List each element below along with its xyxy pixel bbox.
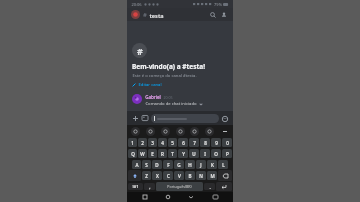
staticText: Q <box>131 151 135 157</box>
button[interactable]: E <box>148 149 157 158</box>
button[interactable]: GIF <box>176 127 185 136</box>
button[interactable]: J <box>196 160 206 169</box>
button[interactable]: Backspace <box>218 170 232 181</box>
staticText: . <box>209 184 211 190</box>
button[interactable]: S <box>142 160 151 169</box>
button[interactable]: N <box>196 171 206 180</box>
button[interactable]: Y <box>178 149 188 158</box>
button[interactable]: Search <box>190 127 199 136</box>
staticText: Bem-vindo(a) a #testa! <box>132 62 205 71</box>
staticText: 5 <box>171 140 174 146</box>
button[interactable]: 3 <box>148 138 157 147</box>
staticText: 0 <box>226 140 229 146</box>
staticText: G <box>177 162 181 168</box>
button[interactable]: 4 <box>158 138 167 147</box>
button[interactable]: Stickers <box>161 127 170 136</box>
staticText: O <box>214 151 218 157</box>
staticText: V <box>178 173 181 179</box>
button[interactable]: # <box>143 11 207 19</box>
button[interactable]: M <box>207 171 217 180</box>
button[interactable]: 0 <box>222 138 232 147</box>
button[interactable]: Switch keyboard <box>203 192 227 202</box>
button[interactable]: Add attachment <box>130 113 140 123</box>
button[interactable]: Gabriel <box>132 94 228 107</box>
staticText: 79% <box>214 2 222 7</box>
button[interactable]: Enter <box>216 182 232 191</box>
staticText: Este é o começo do canal #testa. <box>132 73 197 79</box>
button[interactable]: Z <box>142 171 151 180</box>
button[interactable]: Server <box>131 10 140 19</box>
button[interactable]: Emoji <box>219 113 230 124</box>
button[interactable]: Search <box>207 9 218 20</box>
button[interactable]: T <box>168 149 177 158</box>
button[interactable]: V <box>174 171 184 180</box>
button[interactable]: P <box>222 149 232 158</box>
staticText: N <box>199 173 203 179</box>
button[interactable]: 2 <box>138 138 147 147</box>
staticText: Gabriel <box>145 94 161 100</box>
button[interactable]: B <box>185 171 195 180</box>
staticText: Editar canal <box>138 82 162 88</box>
button[interactable]: 6 <box>178 138 188 147</box>
button[interactable]: Collapse toolbar <box>220 127 229 136</box>
button[interactable]: G <box>174 160 184 169</box>
button[interactable]: F <box>163 160 173 169</box>
button[interactable]: Gallery <box>140 113 150 123</box>
staticText: Português(BR) <box>167 184 192 189</box>
button[interactable]: D <box>152 160 162 169</box>
button[interactable]: Shift <box>128 170 141 181</box>
staticText: P <box>226 151 229 157</box>
button[interactable]: A <box>132 160 141 169</box>
staticText: 20:05 <box>163 95 173 100</box>
staticText: R <box>161 151 164 157</box>
staticText: X <box>156 173 159 179</box>
staticText: # <box>137 45 143 57</box>
button[interactable]: Voice input <box>146 127 155 136</box>
staticText: K <box>211 162 214 168</box>
button[interactable]: X <box>152 171 162 180</box>
staticText: W <box>140 151 145 157</box>
button[interactable]: Q <box>128 149 137 158</box>
button[interactable]: K <box>207 160 217 169</box>
button[interactable]: Members <box>218 9 229 20</box>
button[interactable]: 8 <box>200 138 210 147</box>
button[interactable]: 9 <box>211 138 221 147</box>
button[interactable]: L <box>218 160 228 169</box>
button[interactable]: C <box>163 171 173 180</box>
button[interactable] <box>151 114 219 123</box>
staticText: # <box>143 11 147 19</box>
staticText: 20:06 <box>131 2 142 7</box>
staticText: B <box>188 173 192 179</box>
staticText: !#1 <box>132 184 139 190</box>
staticText: D <box>155 162 159 168</box>
staticText: testa <box>149 12 164 19</box>
button[interactable]: Home <box>156 192 179 202</box>
staticText: I <box>204 151 206 157</box>
button[interactable]: Recents <box>133 192 156 202</box>
staticText: 1 <box>131 140 134 146</box>
button[interactable]: H <box>185 160 195 169</box>
button[interactable]: 1 <box>128 138 137 147</box>
button[interactable]: Clipboard <box>205 127 214 136</box>
button[interactable]: . <box>204 183 215 190</box>
button[interactable]: Português(BR) <box>156 182 203 191</box>
button[interactable]: Hide keyboard <box>179 192 203 202</box>
button[interactable]: R <box>158 149 167 158</box>
staticText: S <box>145 162 148 168</box>
button[interactable]: 5 <box>168 138 177 147</box>
button[interactable]: !#1 <box>128 183 143 190</box>
staticText: H <box>188 162 192 168</box>
button[interactable]: O <box>211 149 221 158</box>
button[interactable]: U <box>189 149 199 158</box>
staticText: 9 <box>215 140 218 146</box>
staticText: T <box>171 151 174 157</box>
button[interactable]: W <box>138 149 147 158</box>
button[interactable]: Editar canal <box>132 82 162 88</box>
button[interactable]: I <box>200 149 210 158</box>
button[interactable]: , <box>144 183 155 190</box>
button[interactable]: 7 <box>189 138 199 147</box>
staticText: , <box>149 184 151 190</box>
staticText: Comando de chat iniciado <box>145 101 197 107</box>
button[interactable]: Settings <box>131 127 140 136</box>
staticText: 2 <box>141 140 144 146</box>
